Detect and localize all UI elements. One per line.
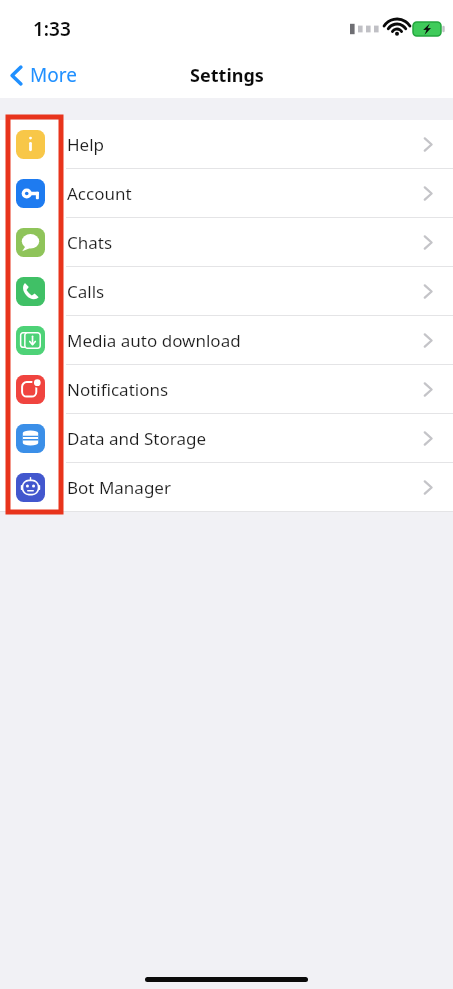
other: Chats	[16, 228, 45, 257]
button[interactable]: Account	[0, 169, 453, 218]
staticText: More	[30, 62, 77, 88]
other: Account	[16, 179, 45, 208]
staticText: Data and Storage	[67, 427, 206, 450]
button[interactable]: Help	[0, 120, 453, 169]
other: Calls	[16, 277, 45, 306]
button[interactable]: Data and Storage	[0, 414, 453, 463]
staticText: Chats	[67, 231, 113, 254]
staticText: 1:33	[33, 16, 71, 42]
other: Data and Storage	[16, 424, 45, 453]
button[interactable]: Calls	[0, 267, 453, 316]
other: Bot Manager	[16, 473, 45, 502]
staticText: Bot Manager	[67, 476, 171, 499]
staticText: Media auto download	[67, 329, 241, 352]
staticText: Account	[67, 182, 132, 205]
other: Help	[16, 130, 45, 159]
staticText: Help	[67, 133, 105, 156]
button[interactable]: Bot Manager	[0, 463, 453, 512]
other: Notifications	[16, 375, 45, 404]
other: Media auto download	[16, 326, 45, 355]
button[interactable]: More	[0, 54, 91, 96]
button[interactable]: Media auto download	[0, 316, 453, 365]
button[interactable]: Chats	[0, 218, 453, 267]
button[interactable]: Notifications	[0, 365, 453, 414]
staticText: Calls	[67, 280, 105, 303]
staticText: Settings	[190, 63, 264, 88]
staticText: Notifications	[67, 378, 169, 401]
